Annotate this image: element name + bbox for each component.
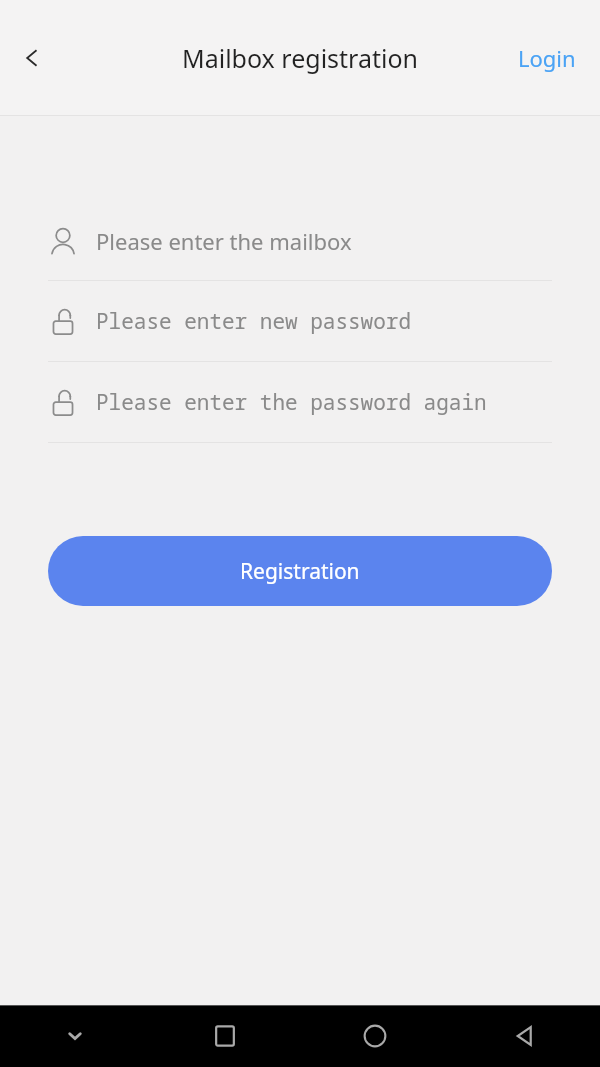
button[interactable]: Home <box>300 1005 450 1067</box>
staticText: Registration <box>240 557 360 586</box>
staticText: Login <box>518 43 576 73</box>
button[interactable]: Back <box>450 1005 600 1067</box>
button[interactable]: Recent apps <box>150 1005 300 1067</box>
button[interactable]: Please enter the mailbox <box>0 200 600 281</box>
staticText: Please enter the password again <box>96 388 566 417</box>
button[interactable]: Hide keyboard <box>0 1005 150 1067</box>
staticText: Mailbox registration <box>182 41 418 75</box>
button[interactable]: Registration <box>48 536 552 606</box>
button[interactable]: Please enter the password again <box>0 362 600 443</box>
button[interactable]: Back <box>8 34 56 82</box>
staticText: Please enter new password <box>96 307 566 336</box>
staticText: Please enter the mailbox <box>96 226 566 256</box>
button[interactable]: Login <box>518 43 576 73</box>
button[interactable]: Please enter new password <box>0 281 600 362</box>
